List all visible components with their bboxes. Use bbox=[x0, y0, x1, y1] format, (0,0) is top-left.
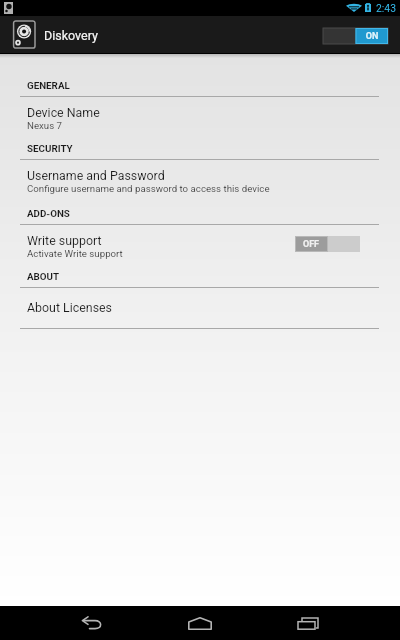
button[interactable]: Write support bbox=[0, 225, 400, 259]
button[interactable]: Diskovery bbox=[8, 17, 40, 53]
staticText: Write support bbox=[27, 233, 102, 248]
staticText: Diskovery bbox=[44, 28, 98, 43]
staticText: Nexus 7 bbox=[27, 120, 63, 131]
button[interactable]: Back bbox=[70, 607, 114, 639]
staticText: SECURITY bbox=[27, 143, 73, 154]
button[interactable]: Recent apps bbox=[286, 607, 330, 639]
button[interactable]: Device Name bbox=[0, 97, 400, 131]
button[interactable]: Switch, on bbox=[323, 28, 388, 44]
staticText: Device Name bbox=[27, 105, 100, 120]
staticText: Configure username and password to acces… bbox=[27, 183, 270, 194]
staticText: About Licenses bbox=[27, 300, 113, 315]
button[interactable]: About Licenses bbox=[0, 300, 400, 315]
staticText: 2:43 bbox=[376, 2, 397, 14]
staticText: ADD-ONS bbox=[27, 208, 70, 219]
button[interactable]: Home bbox=[178, 607, 222, 639]
button[interactable]: Username and Password bbox=[0, 160, 400, 194]
button[interactable]: Switch, off bbox=[295, 236, 360, 252]
staticText: ON bbox=[356, 31, 388, 42]
staticText: OFF bbox=[295, 239, 327, 250]
staticText: ABOUT bbox=[27, 271, 60, 282]
staticText: Username and Password bbox=[27, 168, 165, 183]
staticText: Activate Write support bbox=[27, 248, 123, 259]
staticText: GENERAL bbox=[27, 80, 70, 91]
